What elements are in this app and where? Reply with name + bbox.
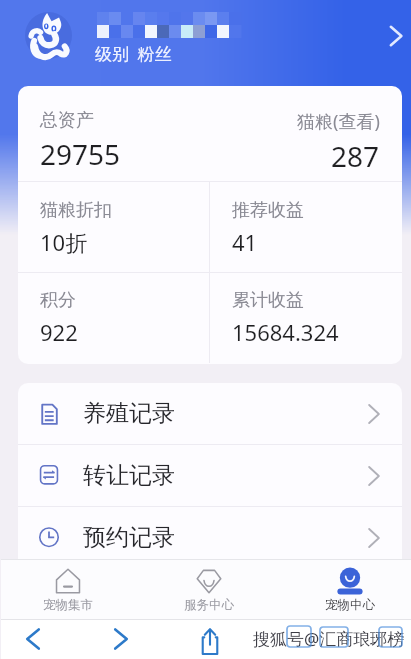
staticText: 41 [232, 227, 258, 257]
staticText: 积分 [40, 289, 76, 312]
button[interactable]: 猫粮(查看) [210, 86, 402, 181]
button[interactable]: Back [6, 619, 60, 659]
staticText: 29755 [40, 135, 121, 173]
button[interactable]: 级别 粉丝 [1, 0, 411, 86]
staticText: 推荐收益 [232, 199, 304, 222]
staticText: 10折 [40, 227, 88, 257]
staticText: 宠物集市 [43, 597, 93, 613]
staticText: 922 [40, 317, 78, 347]
button[interactable]: 宠物中心 [279, 560, 411, 619]
button[interactable]: 转让记录 [18, 445, 402, 506]
staticText: 总资产 [40, 109, 94, 132]
staticText: 转让记录 [83, 461, 175, 490]
button[interactable]: Forward [94, 619, 148, 659]
button[interactable]: 宠物集市 [0, 560, 138, 619]
button[interactable]: 猫粮折扣 [18, 182, 209, 272]
staticText: 287 [331, 137, 380, 175]
button[interactable]: 积分 [18, 273, 209, 363]
button[interactable]: 预约记录 [18, 507, 402, 568]
staticText: 服务中心 [184, 597, 234, 613]
button[interactable]: 总资产 [18, 86, 210, 181]
button[interactable]: 服务中心 [138, 560, 279, 619]
staticText: 养殖记录 [83, 399, 175, 428]
staticText: 累计收益 [232, 289, 304, 312]
staticText: 级别 粉丝 [95, 42, 172, 65]
button[interactable]: 累计收益 [210, 273, 402, 363]
button[interactable]: 养殖记录 [18, 383, 402, 444]
button[interactable]: 推荐收益 [210, 182, 402, 272]
staticText: 宠物中心 [325, 597, 375, 613]
staticText: 预约记录 [83, 523, 175, 552]
staticText: 搜狐号@汇商琅琊榜 [253, 627, 405, 650]
staticText: 猫粮(查看) [297, 109, 380, 134]
staticText: 猫粮折扣 [40, 199, 112, 222]
button[interactable]: Share [183, 619, 237, 659]
staticText: 15684.324 [232, 317, 339, 347]
other: Open profile [386, 25, 408, 47]
